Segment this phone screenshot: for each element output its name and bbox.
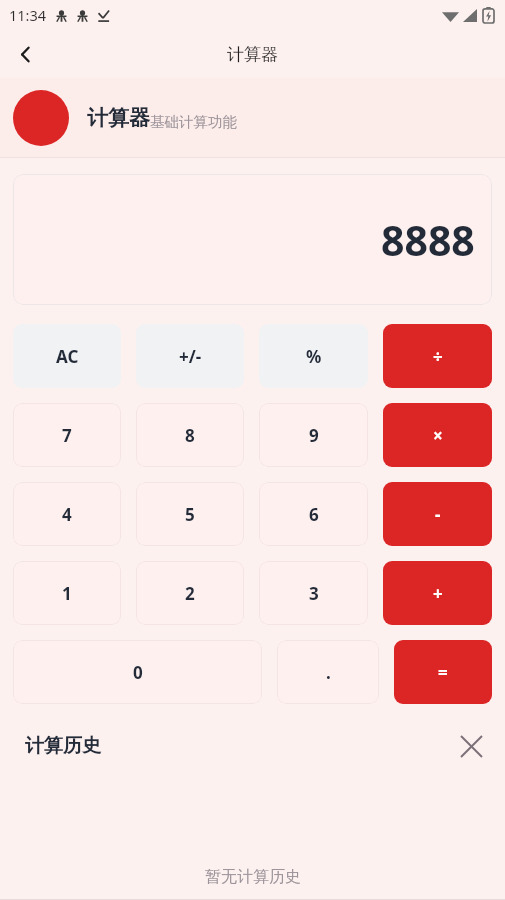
staticText: ÷ — [433, 345, 443, 368]
staticText: 2 — [185, 582, 195, 605]
button[interactable]: - — [383, 482, 492, 546]
button[interactable]: × — [383, 403, 492, 467]
staticText: 6 — [309, 503, 319, 526]
staticText: 0 — [133, 661, 143, 684]
staticText: = — [438, 661, 448, 684]
button[interactable]: % — [259, 324, 368, 388]
button[interactable]: + — [383, 561, 492, 625]
staticText: 8 — [185, 424, 195, 447]
staticText: 计算历史 — [25, 734, 101, 758]
button[interactable]: . — [277, 640, 379, 704]
button[interactable]: 5 — [136, 482, 244, 546]
button[interactable]: 7 — [13, 403, 121, 467]
staticText: - — [435, 503, 441, 526]
button[interactable]: 0 — [13, 640, 262, 704]
staticText: + — [433, 582, 443, 605]
button[interactable]: 4 — [13, 482, 121, 546]
staticText: 计算器 — [227, 44, 278, 65]
staticText: 4 — [62, 503, 72, 526]
staticText: 11:34 — [9, 5, 47, 25]
button[interactable]: 3 — [259, 561, 368, 625]
staticText: 8888 — [381, 212, 475, 268]
staticText: 1 — [62, 582, 72, 605]
button[interactable]: +/- — [136, 324, 244, 388]
button[interactable]: Close history — [451, 726, 491, 766]
staticText: % — [306, 345, 322, 368]
button[interactable]: 2 — [136, 561, 244, 625]
staticText: 暂无计算历史 — [205, 867, 301, 887]
staticText: AC — [56, 345, 79, 368]
button[interactable]: AC — [13, 324, 121, 388]
button[interactable]: 9 — [259, 403, 368, 467]
button[interactable]: = — [394, 640, 492, 704]
staticText: 5 — [185, 503, 195, 526]
button[interactable]: ÷ — [383, 324, 492, 388]
staticText: 3 — [309, 582, 319, 605]
staticText: 9 — [309, 424, 319, 447]
staticText: 计算器 — [87, 105, 150, 131]
button[interactable]: Back — [5, 34, 45, 74]
staticText: 基础计算功能 — [150, 113, 237, 131]
button[interactable]: 1 — [13, 561, 121, 625]
staticText: +/- — [179, 345, 202, 368]
staticText: 7 — [62, 424, 72, 447]
button[interactable]: 8 — [136, 403, 244, 467]
staticText: . — [326, 661, 331, 684]
button[interactable]: 6 — [259, 482, 368, 546]
staticText: × — [433, 424, 443, 447]
